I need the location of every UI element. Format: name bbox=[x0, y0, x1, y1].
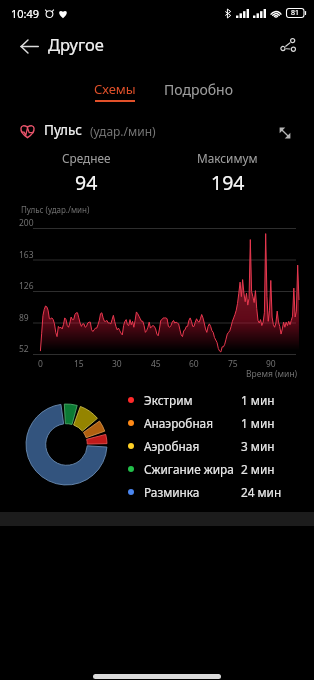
staticText: 126 bbox=[19, 280, 34, 292]
staticText: 200 bbox=[19, 217, 34, 229]
button[interactable]: Expand chart bbox=[272, 121, 298, 145]
staticText: Разминка bbox=[144, 484, 241, 500]
staticText: Анаэробная bbox=[144, 415, 241, 431]
staticText: 90 bbox=[266, 358, 276, 370]
staticText: Экстрим bbox=[144, 392, 241, 408]
staticText: 194 bbox=[211, 169, 245, 196]
button[interactable]: Подробно bbox=[160, 68, 237, 104]
staticText: 15 bbox=[74, 358, 84, 370]
button[interactable]: Сжигание жира bbox=[128, 457, 296, 480]
button[interactable]: Аэробная bbox=[128, 434, 296, 457]
button[interactable]: Разминка bbox=[128, 480, 296, 503]
staticText: (удар./мин) bbox=[90, 123, 156, 139]
button[interactable]: Схемы bbox=[83, 68, 147, 104]
staticText: Среднее bbox=[62, 150, 111, 166]
button[interactable]: Share bbox=[270, 28, 306, 64]
staticText: Максимум bbox=[197, 150, 258, 166]
staticText: 10:49 bbox=[11, 6, 40, 21]
staticText: 0 bbox=[38, 358, 43, 370]
staticText: Время (мин) bbox=[246, 368, 298, 380]
staticText: 163 bbox=[19, 249, 34, 261]
staticText: 2 мин bbox=[241, 461, 275, 477]
button[interactable]: Анаэробная bbox=[128, 411, 296, 434]
button[interactable]: Back bbox=[10, 27, 48, 65]
staticText: Другое bbox=[48, 33, 104, 55]
staticText: Пульс (удар./мин) bbox=[21, 204, 90, 215]
staticText: Схемы bbox=[94, 80, 136, 98]
staticText: Подробно bbox=[164, 80, 234, 99]
staticText: 81 bbox=[291, 8, 300, 18]
staticText: 30 bbox=[112, 358, 122, 370]
staticText: 24 мин bbox=[241, 484, 282, 500]
staticText: 3 мин bbox=[241, 438, 275, 454]
staticText: 45 bbox=[151, 358, 161, 370]
staticText: Пульс bbox=[44, 121, 83, 139]
staticText: 1 мин bbox=[241, 392, 275, 408]
staticText: 75 bbox=[228, 358, 238, 370]
staticText: 89 bbox=[19, 312, 29, 324]
button[interactable]: Экстрим bbox=[128, 388, 296, 411]
staticText: Сжигание жира bbox=[144, 461, 241, 477]
staticText: Аэробная bbox=[144, 438, 241, 454]
staticText: 52 bbox=[19, 343, 29, 355]
staticText: 94 bbox=[75, 169, 98, 196]
staticText: 1 мин bbox=[241, 415, 275, 431]
staticText: 60 bbox=[189, 358, 199, 370]
